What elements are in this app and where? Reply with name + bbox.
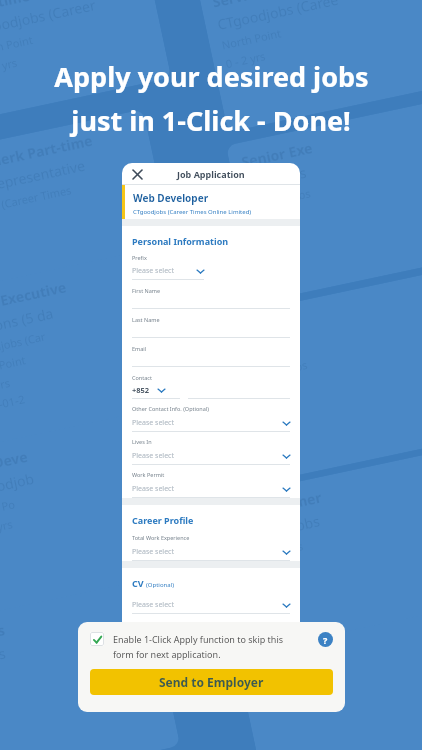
staticText: Web Deve bbox=[0, 447, 29, 480]
staticText: Apply your desired jobs bbox=[54, 58, 369, 95]
button[interactable]: Lives In bbox=[132, 438, 290, 465]
staticText: First Name bbox=[132, 287, 161, 294]
staticText: Web Developer bbox=[133, 191, 209, 205]
staticText: Senior Executive bbox=[0, 277, 68, 320]
staticText: Senior Exe bbox=[240, 138, 315, 172]
button[interactable]: Work Permit bbox=[132, 471, 290, 498]
button[interactable]: Web Developer bbox=[122, 185, 300, 219]
staticText: Please select bbox=[132, 418, 174, 428]
staticText: Total Work Experience bbox=[132, 534, 190, 541]
staticText: -time Clerk Part-time bbox=[0, 131, 94, 180]
staticText: Work Permit bbox=[132, 471, 165, 478]
staticText: Please select bbox=[132, 600, 174, 610]
staticText: Send to Employer bbox=[159, 674, 264, 690]
staticText: Email bbox=[132, 345, 147, 352]
staticText: CTgoodjobs (Career Times Online Limited) bbox=[133, 208, 252, 216]
staticText: CV bbox=[132, 577, 144, 589]
staticText: Part-time Clerk bbox=[0, 0, 71, 18]
staticText: Please select bbox=[132, 266, 174, 276]
staticText: CTgoodjobs bbox=[249, 185, 312, 213]
button[interactable]: Other Contact Info. (Optional) bbox=[132, 405, 290, 432]
button[interactable]: Help bbox=[318, 632, 333, 647]
staticText: CTgoodjo bbox=[250, 648, 317, 680]
staticText: Please select bbox=[132, 451, 174, 461]
staticText: 0 - 2 yrs bbox=[224, 48, 267, 71]
staticText: Enable 1-Click Apply function to skip th… bbox=[113, 633, 284, 645]
button[interactable]: Enable 1-Click Apply bbox=[90, 632, 104, 646]
staticText: Personal Information bbox=[132, 235, 229, 247]
staticText: ? bbox=[323, 634, 328, 646]
staticText: vices Representative bbox=[0, 156, 87, 202]
staticText: Job Application bbox=[177, 168, 245, 180]
staticText: Please select bbox=[132, 484, 174, 494]
staticText: form for next application. bbox=[113, 648, 221, 660]
staticText: Other Contact Info. (Optional) bbox=[132, 405, 209, 412]
staticText: Web bbox=[248, 316, 283, 341]
staticText: Please select bbox=[132, 547, 174, 557]
staticText: Lives In bbox=[132, 438, 152, 445]
staticText: Services Rep bbox=[211, 0, 301, 11]
staticText: goodjobs bbox=[258, 357, 309, 382]
staticText: Prefix bbox=[132, 254, 147, 261]
staticText: Last Name bbox=[132, 316, 160, 323]
button[interactable]: Send to Employer bbox=[90, 669, 333, 695]
staticText: oodjobs bbox=[0, 620, 7, 650]
staticText: Customer bbox=[252, 487, 324, 520]
button[interactable]: Close bbox=[128, 165, 146, 183]
staticText: Contact bbox=[132, 374, 152, 381]
staticText: Career Profile bbox=[132, 514, 194, 526]
staticText: (Optional) bbox=[146, 581, 174, 589]
staticText: goodjobs bbox=[257, 511, 322, 543]
staticText: 0 - 2 yrs bbox=[262, 538, 305, 561]
staticText: just in 1-Click - Done! bbox=[71, 102, 351, 139]
staticText: +852 bbox=[132, 385, 150, 395]
button[interactable]: Total Work Experience bbox=[132, 534, 290, 561]
button[interactable]: Please select bbox=[132, 597, 290, 614]
staticText: Solutions bbox=[244, 163, 308, 194]
